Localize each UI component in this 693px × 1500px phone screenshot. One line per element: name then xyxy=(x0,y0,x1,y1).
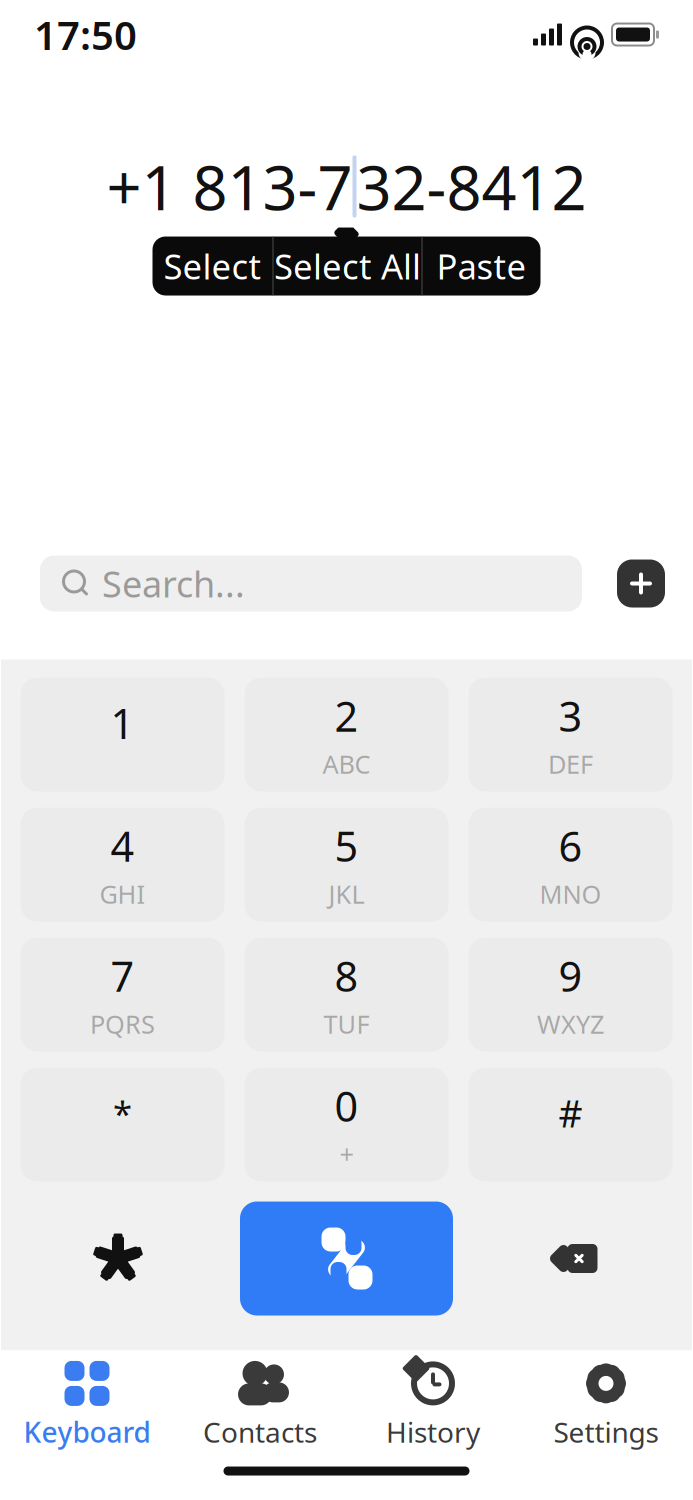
button[interactable]: Favorites xyxy=(16,1201,220,1315)
staticText: GHI xyxy=(99,877,145,911)
button[interactable]: 2 xyxy=(244,677,448,791)
staticText: # xyxy=(558,1088,582,1138)
staticText: 1 xyxy=(110,696,134,750)
staticText: Contacts xyxy=(203,1413,317,1451)
staticText: 32-8412 xyxy=(356,146,586,227)
button[interactable]: 3 xyxy=(468,677,672,791)
button[interactable]: 7 xyxy=(20,937,224,1051)
staticText: 0 xyxy=(334,1078,358,1133)
button[interactable]: Paste xyxy=(422,236,540,295)
staticText: 5 xyxy=(334,818,358,873)
staticText: TUF xyxy=(323,1007,369,1041)
staticText: 7 xyxy=(110,948,134,1003)
button[interactable]: 9 xyxy=(468,937,672,1051)
staticText: No Contacts xyxy=(251,237,442,282)
button[interactable]: 6 xyxy=(468,807,672,921)
button[interactable]: Contacts xyxy=(173,1353,346,1457)
staticText: History xyxy=(386,1413,480,1451)
button[interactable]: * xyxy=(20,1067,224,1181)
staticText: 6 xyxy=(558,818,582,873)
staticText: 17:50 xyxy=(34,8,137,61)
staticText: Search... xyxy=(102,560,245,607)
button[interactable]: History xyxy=(346,1353,519,1457)
button[interactable]: Keyboard xyxy=(0,1353,173,1457)
button[interactable]: 5 xyxy=(244,807,448,921)
button[interactable]: 1 xyxy=(20,677,224,791)
staticText: ABC xyxy=(322,747,370,781)
button[interactable]: Select xyxy=(152,236,272,295)
staticText: PQRS xyxy=(90,1007,155,1041)
button[interactable]: Settings xyxy=(519,1353,692,1457)
staticText: WXYZ xyxy=(537,1007,604,1041)
staticText: Select All xyxy=(274,243,421,289)
button[interactable]: Select All xyxy=(273,236,421,295)
staticText: DEF xyxy=(548,747,593,781)
staticText: 4 xyxy=(110,818,134,873)
staticText: Keyboard xyxy=(23,1413,150,1451)
staticText: JKL xyxy=(328,877,364,911)
staticText: Paste xyxy=(436,243,526,289)
staticText: +1 813-7 xyxy=(106,146,352,227)
button[interactable]: Call xyxy=(240,1201,453,1315)
staticText: + xyxy=(339,1137,353,1171)
staticText: Select xyxy=(163,243,261,289)
button[interactable]: Delete xyxy=(473,1201,677,1315)
button[interactable]: 4 xyxy=(20,807,224,921)
button[interactable]: Add contact xyxy=(617,559,665,607)
staticText: 3 xyxy=(558,688,582,743)
button[interactable]: Search... xyxy=(40,555,582,611)
button[interactable]: # xyxy=(468,1067,672,1181)
staticText: * xyxy=(113,1090,132,1136)
staticText: Settings xyxy=(553,1413,658,1451)
button[interactable]: 8 xyxy=(244,937,448,1051)
button[interactable]: 0 xyxy=(244,1067,448,1181)
staticText: 9 xyxy=(558,948,582,1003)
staticText: 2 xyxy=(334,688,358,743)
staticText: MNO xyxy=(539,877,601,911)
staticText: 8 xyxy=(334,948,358,1003)
